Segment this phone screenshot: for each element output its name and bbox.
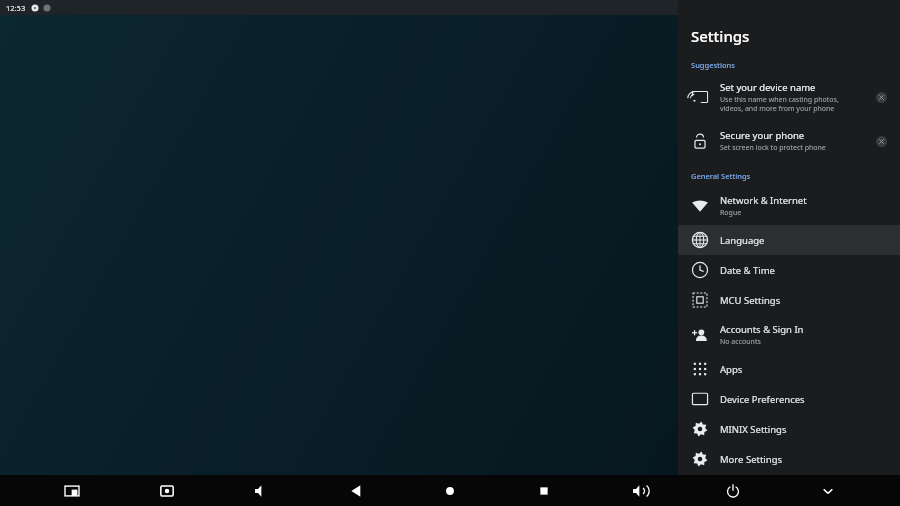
staticText: Date & Time [720,264,775,277]
staticText: No accounts [720,337,761,347]
staticText: MCU Settings [720,294,781,307]
staticText: Rogue [720,208,742,218]
staticText: General Settings [691,171,751,181]
button[interactable]: MCU Settings [678,285,900,315]
button[interactable]: Volume up [617,475,661,506]
staticText: Set screen lock to protect phone [720,143,826,153]
button[interactable]: Power [711,475,755,506]
staticText: More Settings [720,453,783,466]
button[interactable]: Picture in picture [50,475,94,506]
staticText: Settings [691,26,750,46]
button[interactable]: Back [334,475,378,506]
staticText: Language [720,234,765,247]
staticText: Use this name when casting photos, video… [720,95,839,113]
staticText: Set your device name [720,81,816,94]
button[interactable]: Home [428,475,472,506]
button[interactable]: Device Preferences [678,384,900,414]
staticText: Device Preferences [720,393,805,406]
button[interactable]: MINIX Settings [678,414,900,444]
button[interactable]: Network & Internet [678,186,900,225]
button[interactable]: Screenshot [145,475,189,506]
button[interactable]: Language [678,225,900,255]
staticText: MINIX Settings [720,423,787,436]
button[interactable]: Dismiss Secure your phone [871,131,891,151]
staticText: Suggestions [691,60,735,70]
button[interactable]: Accounts & Sign In [678,315,900,354]
button[interactable]: Set your device name [678,75,900,119]
button[interactable]: Hide navigation [806,475,850,506]
staticText: 12:53 [6,3,26,13]
button[interactable]: Apps [678,354,900,384]
button[interactable]: Date & Time [678,255,900,285]
staticText: Accounts & Sign In [720,323,804,336]
button[interactable]: Volume down [239,475,283,506]
staticText: Network & Internet [720,194,807,207]
button[interactable]: Recent apps [522,475,566,506]
button[interactable]: Dismiss Set your device name [871,87,891,107]
button[interactable]: More Settings [678,444,900,474]
staticText: Apps [720,363,743,376]
button[interactable]: Secure your phone [678,119,900,163]
staticText: Secure your phone [720,129,805,142]
